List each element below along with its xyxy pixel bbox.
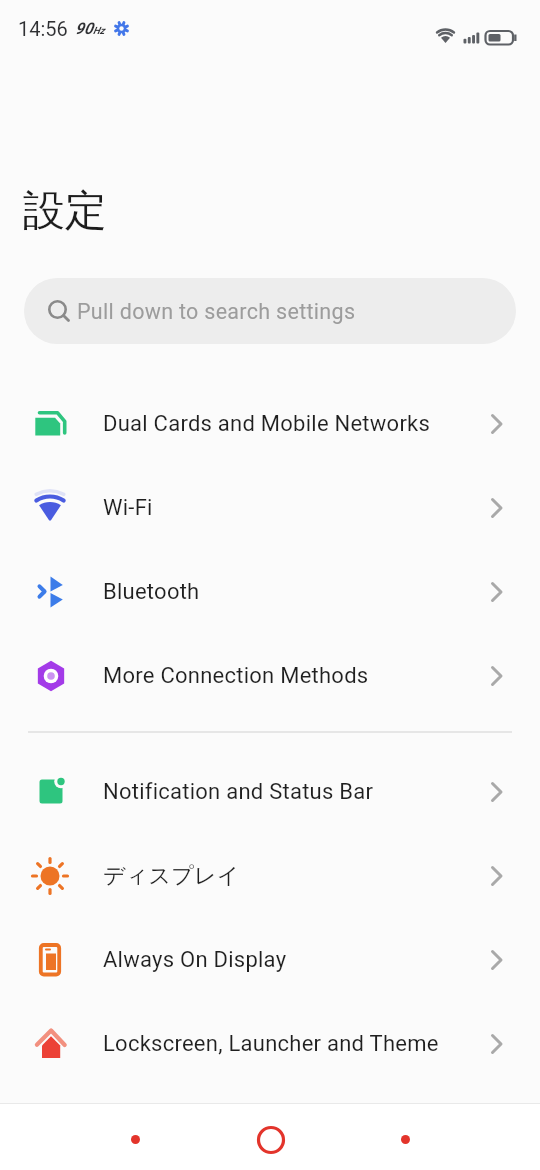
button[interactable]: Always On Display — [0, 918, 540, 1002]
staticText: Bluetooth — [103, 579, 200, 605]
staticText: More Connection Methods — [103, 663, 369, 689]
staticText: Always On Display — [103, 947, 287, 973]
staticText: Dual Cards and Mobile Networks — [103, 411, 431, 437]
button[interactable]: Lockscreen, Launcher and Theme — [0, 1002, 540, 1086]
staticText: 90 — [75, 19, 93, 38]
staticText: ディスプレイ — [103, 862, 240, 890]
button[interactable]: ディスプレイ — [0, 834, 540, 918]
button[interactable]: Wi-Fi — [0, 466, 540, 550]
staticText: 設定 — [23, 185, 107, 238]
staticText: Notification and Status Bar — [103, 779, 374, 805]
button[interactable] — [67, 1109, 203, 1170]
button[interactable]: Pull down to search settings — [24, 278, 516, 344]
button[interactable] — [338, 1109, 473, 1170]
staticText: 14:56 — [18, 17, 68, 40]
button[interactable]: Bluetooth — [0, 550, 540, 634]
staticText: Pull down to search settings — [77, 299, 356, 324]
button[interactable]: More Connection Methods — [0, 634, 540, 718]
staticText: Wi-Fi — [103, 495, 153, 521]
button[interactable]: Notification and Status Bar — [0, 750, 540, 834]
staticText: Hz — [93, 25, 105, 37]
button[interactable]: Dual Cards and Mobile Networks — [0, 382, 540, 466]
button[interactable] — [203, 1109, 338, 1170]
staticText: Lockscreen, Launcher and Theme — [103, 1031, 439, 1057]
